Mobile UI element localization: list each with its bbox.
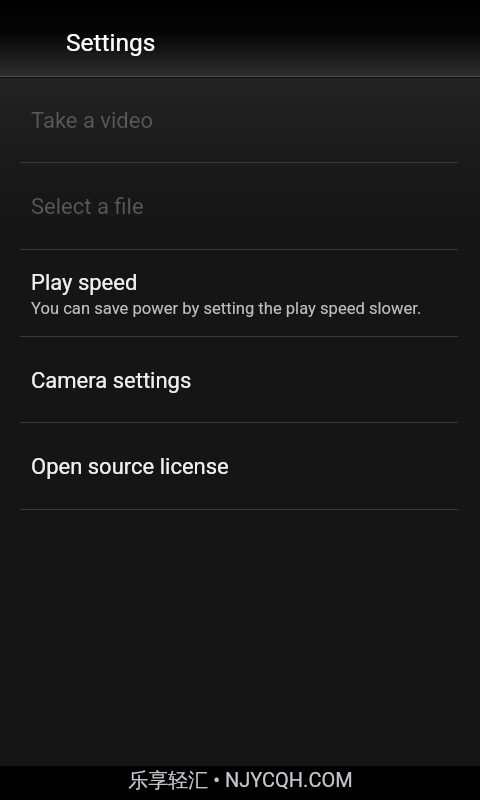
button[interactable]: Play speed (0, 250, 480, 337)
button: Select a file (0, 163, 480, 250)
staticText: You can save power by setting the play s… (31, 299, 422, 318)
staticText: 乐享轻汇 • NJYCQH.COM (128, 768, 353, 793)
button[interactable]: Open source license (0, 423, 480, 510)
button: Take a video (0, 78, 480, 163)
staticText: Camera settings (31, 368, 192, 394)
staticText: Take a video (31, 108, 153, 134)
staticText: Settings (66, 28, 156, 57)
staticText: Play speed (31, 270, 138, 296)
button[interactable]: Camera settings (0, 337, 480, 423)
staticText: Open source license (31, 454, 229, 480)
staticText: Select a file (31, 194, 144, 220)
